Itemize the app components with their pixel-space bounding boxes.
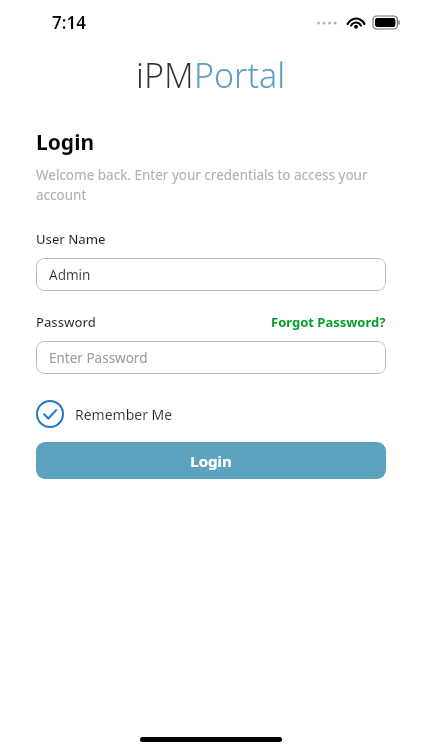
button[interactable]: Enter Password <box>36 341 386 374</box>
staticText: Enter Password <box>49 349 148 367</box>
button[interactable]: Remember Me <box>36 400 173 428</box>
button[interactable]: Login <box>36 442 386 479</box>
staticText: User Name <box>36 230 106 248</box>
staticText: Login <box>190 451 232 471</box>
staticText: Password <box>36 313 96 331</box>
staticText: iPM <box>136 52 194 98</box>
button[interactable]: Admin <box>36 258 386 291</box>
staticText: 7:14 <box>52 11 86 34</box>
staticText: Login <box>36 128 95 157</box>
staticText: Admin <box>49 266 91 284</box>
staticText: Remember Me <box>75 405 173 424</box>
staticText: Welcome back. Enter your credentials to … <box>36 166 386 204</box>
button[interactable]: Forgot Password? <box>271 313 386 331</box>
staticText: Forgot Password? <box>271 313 386 331</box>
staticText: Portal <box>194 52 286 98</box>
